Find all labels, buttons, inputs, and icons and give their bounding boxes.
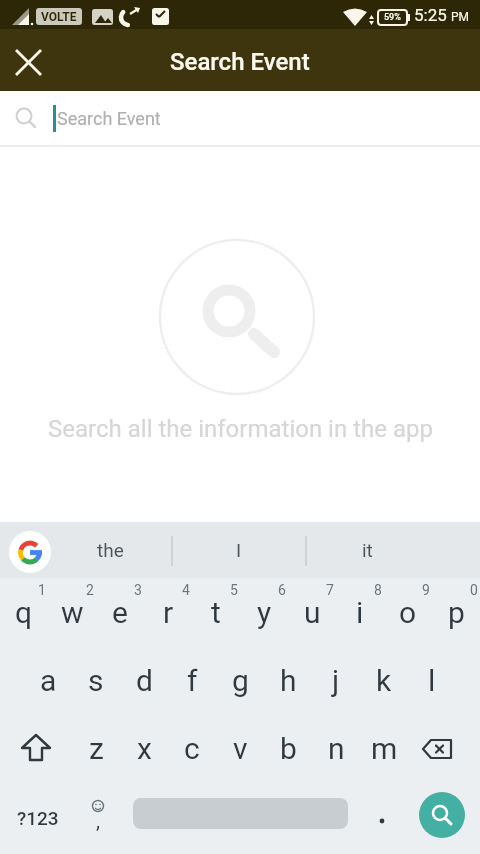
button[interactable]: j — [312, 646, 360, 714]
staticText: d — [136, 663, 153, 698]
staticText: z — [89, 731, 104, 766]
staticText: 3 — [134, 582, 142, 598]
button[interactable]: i — [336, 578, 384, 646]
staticText: VOLTE — [41, 10, 77, 24]
button[interactable]: f — [168, 646, 216, 714]
staticText: y — [257, 595, 272, 630]
button[interactable]: c — [168, 714, 216, 782]
staticText: 9 — [422, 582, 430, 598]
staticText: j — [332, 663, 340, 698]
button[interactable]: I — [172, 522, 306, 578]
button[interactable] — [9, 531, 51, 573]
staticText: h — [280, 663, 297, 698]
button[interactable]: b — [264, 714, 312, 782]
staticText: I — [236, 539, 242, 561]
button[interactable]: m — [360, 714, 408, 782]
button[interactable] — [404, 782, 480, 850]
button[interactable]: s — [72, 646, 120, 714]
staticText: 1 — [38, 582, 46, 598]
staticText: s — [88, 663, 104, 698]
staticText: Search Event — [170, 48, 310, 76]
button[interactable]: l — [408, 646, 456, 714]
staticText: k — [376, 663, 392, 698]
staticText: the — [97, 539, 124, 561]
staticText: g — [232, 663, 249, 698]
button[interactable]: v — [216, 714, 264, 782]
button[interactable] — [360, 782, 404, 850]
staticText: 59% — [384, 12, 401, 23]
staticText: a — [40, 663, 57, 698]
staticText: u — [304, 595, 321, 630]
button[interactable]: x — [120, 714, 168, 782]
button[interactable]: o — [384, 578, 432, 646]
button[interactable]: z — [72, 714, 120, 782]
staticText: f — [187, 663, 198, 698]
button[interactable]: k — [360, 646, 408, 714]
staticText: 0 — [470, 582, 478, 598]
staticText: Search Event — [57, 108, 161, 129]
staticText: it — [362, 539, 373, 561]
button[interactable]: the — [49, 522, 172, 578]
staticText: i — [356, 595, 364, 630]
staticText: q — [15, 595, 33, 630]
button[interactable]: w — [48, 578, 96, 646]
staticText: 2 — [86, 582, 94, 598]
button[interactable]: q — [0, 578, 48, 646]
button[interactable]: h — [264, 646, 312, 714]
button[interactable]: a — [24, 646, 72, 714]
staticText: t — [211, 595, 221, 630]
button[interactable]: n — [312, 714, 360, 782]
button[interactable]: t — [192, 578, 240, 646]
staticText: 6 — [278, 582, 286, 598]
staticText: ?123 — [17, 807, 59, 829]
staticText: , — [96, 809, 100, 832]
button[interactable]: u — [288, 578, 336, 646]
button[interactable]: d — [120, 646, 168, 714]
button[interactable] — [0, 714, 72, 782]
staticText: 8 — [374, 582, 382, 598]
button[interactable] — [120, 782, 360, 850]
staticText: 5 — [230, 582, 238, 598]
staticText: x — [137, 731, 152, 766]
button[interactable]: g — [216, 646, 264, 714]
staticText: p — [448, 595, 465, 630]
staticText: 5:25 PM — [414, 5, 470, 25]
staticText: b — [280, 731, 297, 766]
staticText: e — [112, 595, 128, 630]
button[interactable]: it — [306, 522, 428, 578]
staticText: m — [371, 731, 398, 766]
button[interactable]: r — [144, 578, 192, 646]
staticText: 7 — [326, 582, 334, 598]
staticText: v — [233, 731, 248, 766]
staticText: Search all the information in the app — [48, 415, 433, 443]
button[interactable]: p — [432, 578, 480, 646]
staticText: w — [61, 595, 84, 630]
staticText: o — [399, 595, 417, 630]
button[interactable]: Search Event — [0, 91, 480, 145]
button[interactable] — [8, 42, 48, 82]
staticText: r — [163, 595, 174, 630]
staticText: l — [428, 663, 436, 698]
button[interactable] — [408, 714, 480, 782]
button[interactable]: ?123 — [0, 782, 76, 850]
button[interactable]: , — [76, 782, 120, 850]
staticText: c — [184, 731, 200, 766]
staticText: n — [328, 731, 345, 766]
button[interactable]: e — [96, 578, 144, 646]
staticText: 4 — [182, 582, 190, 598]
button[interactable]: y — [240, 578, 288, 646]
